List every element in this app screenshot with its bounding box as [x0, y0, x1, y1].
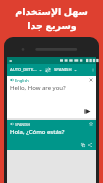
button[interactable]: SPANISH: [54, 64, 89, 76]
button[interactable]: More options: [89, 64, 96, 76]
button[interactable]: Save translation: [89, 122, 93, 126]
button[interactable]: AUTO_DETE…: [7, 64, 42, 76]
staticText: SPANISH: [15, 122, 31, 127]
button[interactable]: Swap languages: [42, 64, 54, 76]
staticText: English: [15, 78, 29, 83]
button[interactable]: Clear: [89, 78, 93, 82]
staticText: AUTO_DETE…: [10, 67, 37, 73]
button[interactable]: Listen to translation: [10, 122, 14, 126]
button[interactable]: Copy: [80, 142, 86, 148]
staticText: Hello, How are you?: [10, 84, 66, 92]
button[interactable]: Share: [87, 142, 93, 148]
staticText: Hola, ¿Cómo estás?: [10, 128, 65, 136]
button[interactable]: Listen: [10, 78, 14, 82]
staticText: سهل الإستخدام: [15, 5, 88, 18]
button[interactable]: Translate: [83, 107, 92, 116]
staticText: SPANISH: [54, 67, 72, 73]
staticText: وسريع جدا: [27, 19, 77, 32]
